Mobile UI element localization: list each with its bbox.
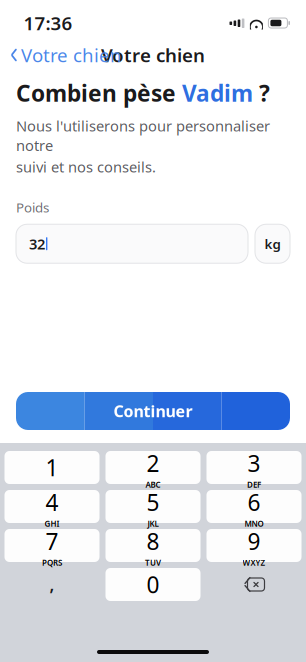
staticText: 6	[247, 487, 260, 517]
staticText: Nous l'utiliserons pour personnaliser no…	[16, 116, 270, 155]
staticText: 17:36	[23, 11, 72, 35]
staticText: WXYZ	[242, 557, 265, 568]
button[interactable]: 8	[105, 529, 200, 562]
button[interactable]: 7	[4, 529, 99, 562]
button[interactable]: 4	[4, 490, 99, 523]
button[interactable]: kg	[255, 224, 290, 263]
staticText: GHI	[44, 518, 59, 529]
staticText: MNO	[244, 518, 263, 529]
staticText: 8	[146, 526, 159, 556]
button[interactable]: 32	[16, 224, 248, 263]
staticText: JKL	[147, 518, 158, 529]
staticText: Vadim	[182, 78, 253, 108]
staticText: ,	[49, 573, 54, 596]
staticText: kg	[264, 235, 280, 253]
staticText: 2	[146, 448, 159, 478]
button[interactable]: 6	[206, 490, 301, 523]
button[interactable]: Continuer	[0, 392, 306, 430]
staticText: ?	[253, 78, 270, 108]
staticText: 5	[146, 487, 159, 517]
button[interactable]: Supprimer	[206, 568, 301, 601]
staticText: ABC	[145, 479, 160, 490]
button[interactable]: 2	[105, 451, 200, 484]
staticText: 1	[45, 452, 58, 482]
staticText: suivi et nos conseils.	[16, 157, 156, 177]
staticText: Poids	[16, 198, 49, 216]
staticText: Votre chien	[101, 43, 205, 67]
staticText: 0	[146, 569, 159, 599]
staticText: PQRS	[42, 557, 62, 568]
staticText: 7	[45, 526, 58, 556]
staticText: 4	[45, 487, 58, 517]
staticText: Votre chien	[21, 43, 122, 67]
staticText: 3	[247, 448, 260, 478]
button[interactable]: 1	[4, 451, 99, 484]
staticText: DEF	[247, 479, 261, 490]
button[interactable]: ,	[4, 568, 99, 601]
staticText: Continuer	[113, 400, 192, 422]
button[interactable]: 3	[206, 451, 301, 484]
staticText: 32	[29, 234, 45, 253]
staticText: TUV	[145, 557, 161, 568]
button[interactable]: 5	[105, 490, 200, 523]
button[interactable]: 9	[206, 529, 301, 562]
staticText: Combien pèse	[16, 78, 182, 108]
button[interactable]: Votre chien	[0, 37, 122, 73]
button[interactable]: 0	[105, 568, 200, 601]
staticText: 9	[247, 526, 260, 556]
